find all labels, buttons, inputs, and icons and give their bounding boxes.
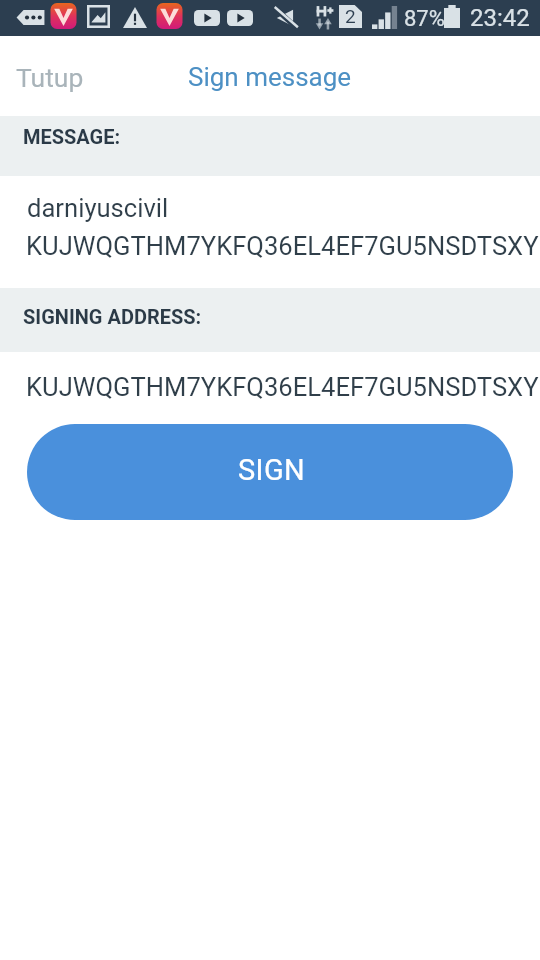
staticText: MESSAGE: (23, 125, 121, 148)
staticText: KUJWQGTHM7YKFQ36EL4EF7GU5NSDTSXY (26, 372, 539, 402)
button[interactable]: Tutup (0, 36, 100, 116)
staticText: 87% (404, 6, 445, 32)
staticText: SIGN (238, 453, 306, 487)
staticText: 2 (345, 5, 356, 27)
staticText: Tutup (16, 62, 84, 93)
staticText: 23:42 (470, 4, 530, 32)
button[interactable]: SIGN (27, 424, 513, 520)
staticText: KUJWQGTHM7YKFQ36EL4EF7GU5NSDTSXY (26, 231, 539, 261)
staticText: Sign message (188, 62, 352, 92)
staticText: SIGNING ADDRESS: (23, 305, 202, 328)
staticText: darniyuscivil (27, 193, 169, 223)
